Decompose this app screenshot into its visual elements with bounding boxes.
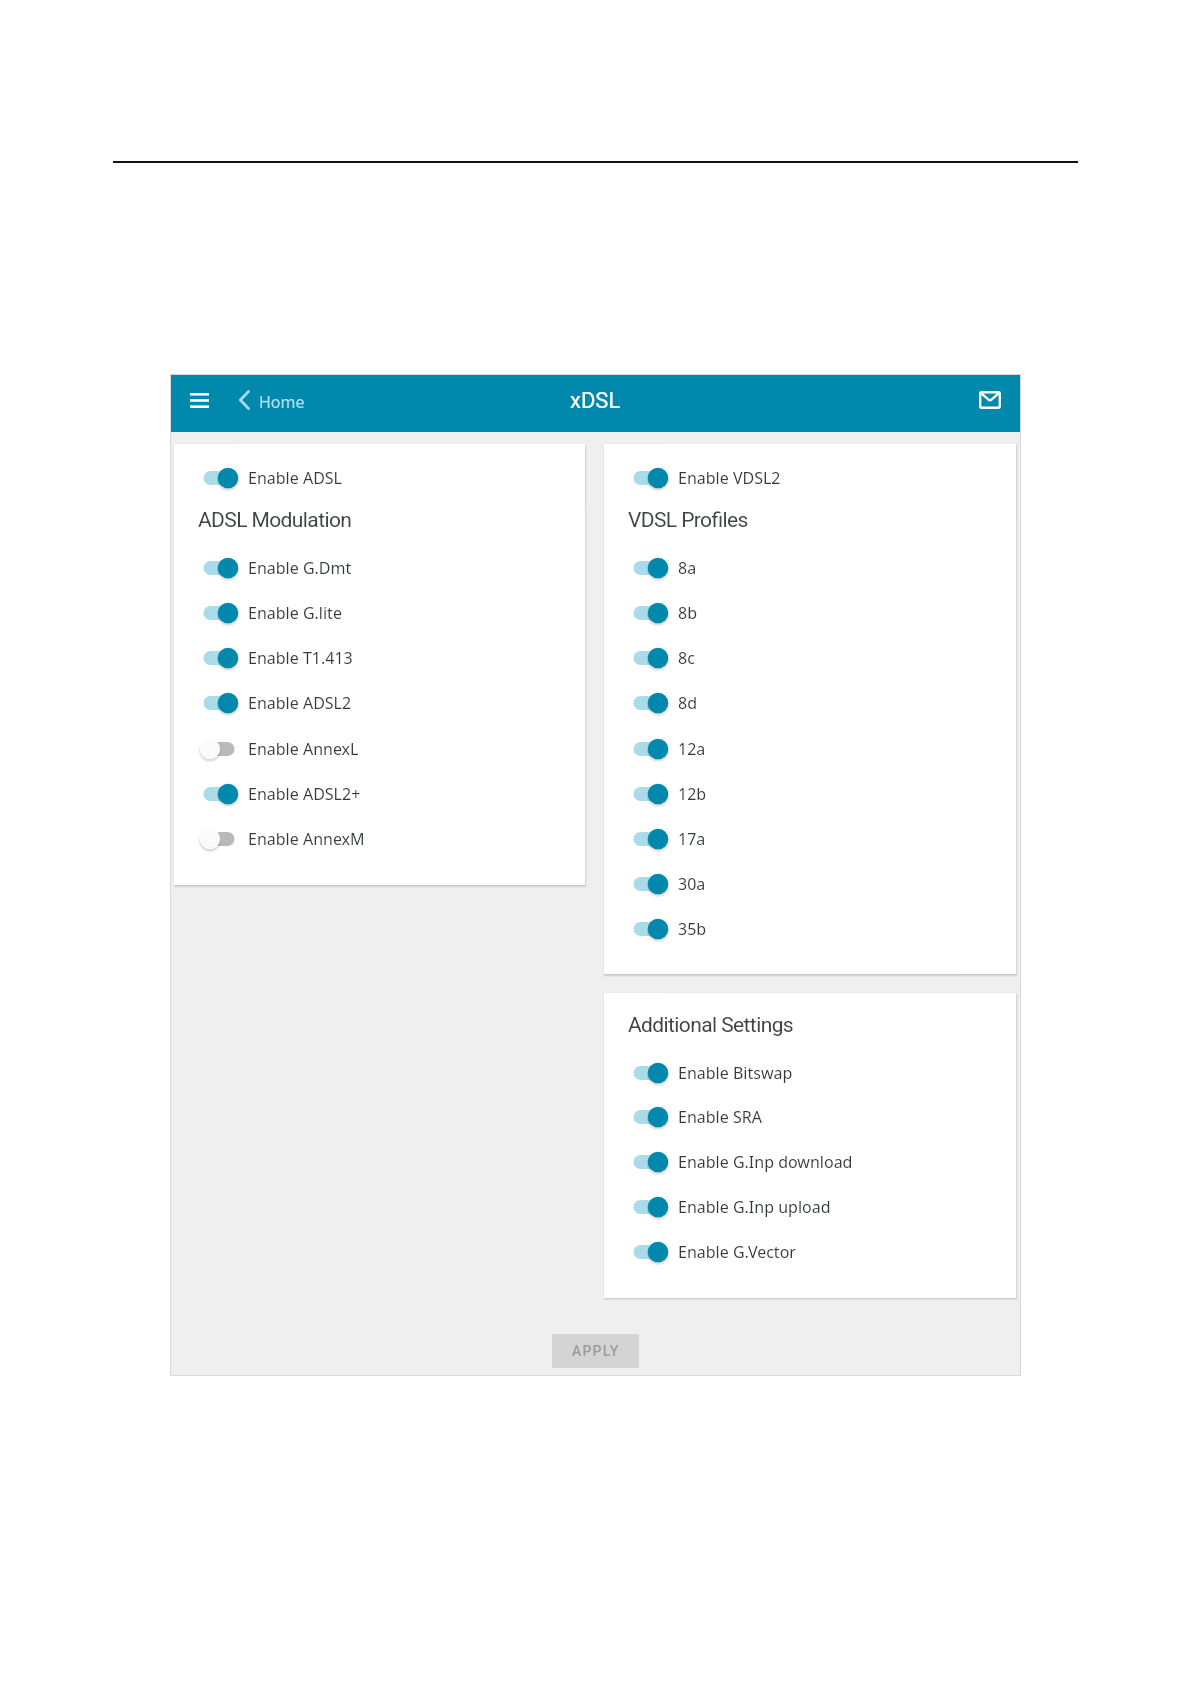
staticText: Enable AnnexM [248, 828, 365, 850]
button[interactable]: Enable G.Vector [604, 1235, 1016, 1269]
staticText: ADSL Modulation [198, 508, 352, 533]
button[interactable]: Enable SRA [604, 1100, 1016, 1134]
staticText: VDSL Profiles [628, 508, 748, 533]
staticText: Enable G.Vector [678, 1241, 796, 1263]
button[interactable]: APPLY [552, 1334, 639, 1368]
staticText: Enable T1.413 [248, 647, 353, 669]
staticText: Enable ADSL2+ [248, 783, 361, 805]
button[interactable]: Notifications [959, 374, 1021, 432]
staticText: Home [259, 391, 305, 413]
button[interactable]: 30a [604, 867, 1016, 901]
button[interactable]: Enable ADSL [174, 461, 585, 495]
staticText: Enable ADSL [248, 467, 342, 489]
button[interactable]: 12a [604, 732, 1016, 766]
staticText: Enable ADSL2 [248, 692, 352, 714]
button[interactable]: Enable AnnexL [174, 732, 585, 766]
button[interactable]: Enable Bitswap [604, 1056, 1016, 1090]
button[interactable]: Enable VDSL2 [604, 461, 1016, 495]
staticText: 30a [678, 873, 706, 895]
staticText: Enable G.Inp download [678, 1151, 853, 1173]
button[interactable]: 12b [604, 777, 1016, 811]
button[interactable]: Enable G.lite [174, 596, 585, 630]
staticText: 8d [678, 692, 697, 714]
button[interactable]: 8b [604, 596, 1016, 630]
button[interactable]: Enable ADSL2 [174, 686, 585, 720]
button[interactable]: 8a [604, 551, 1016, 585]
staticText: APPLY [572, 1343, 620, 1359]
button[interactable]: Enable AnnexM [174, 822, 585, 856]
button[interactable]: Enable ADSL2+ [174, 777, 585, 811]
staticText: xDSL [570, 388, 621, 410]
button[interactable]: 8d [604, 686, 1016, 720]
staticText: 8c [678, 647, 695, 669]
button[interactable]: Enable T1.413 [174, 641, 585, 675]
staticText: 17a [678, 828, 706, 850]
staticText: Enable SRA [678, 1106, 762, 1128]
staticText: 35b [678, 918, 707, 940]
button[interactable]: Enable G.Inp download [604, 1145, 1016, 1179]
staticText: Enable G.Dmt [248, 557, 352, 579]
staticText: Enable AnnexL [248, 738, 359, 760]
staticText: 12b [678, 783, 707, 805]
button[interactable]: 8c [604, 641, 1016, 675]
button[interactable]: 17a [604, 822, 1016, 856]
button[interactable]: Home [232, 374, 310, 432]
staticText: Enable VDSL2 [678, 467, 781, 489]
staticText: 12a [678, 738, 706, 760]
staticText: Enable G.Inp upload [678, 1196, 831, 1218]
button[interactable]: 35b [604, 912, 1016, 946]
staticText: 8a [678, 557, 697, 579]
button[interactable]: Open navigation menu [170, 374, 220, 432]
staticText: Enable G.lite [248, 602, 342, 624]
staticText: Additional Settings [628, 1013, 794, 1038]
button[interactable]: Enable G.Dmt [174, 551, 585, 585]
staticText: 8b [678, 602, 697, 624]
button[interactable]: Enable G.Inp upload [604, 1190, 1016, 1224]
staticText: Enable Bitswap [678, 1062, 793, 1084]
